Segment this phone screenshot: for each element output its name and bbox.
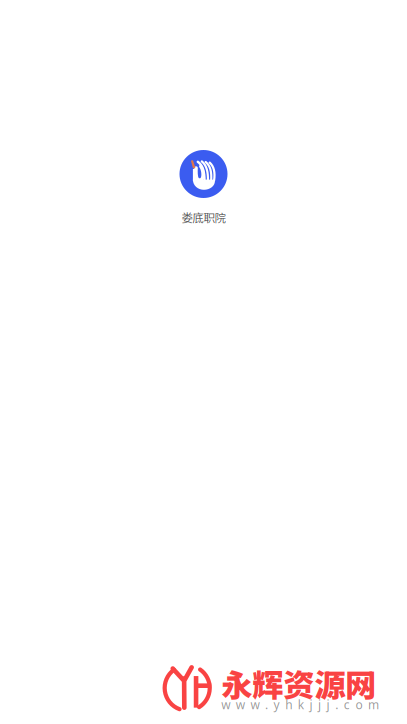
button[interactable]: 娄底职院 <box>179 150 227 226</box>
staticText: www.yhkjjj.com <box>221 696 379 712</box>
staticText: 永辉资源网 <box>221 660 376 706</box>
staticText: 娄底职院 <box>181 209 225 226</box>
